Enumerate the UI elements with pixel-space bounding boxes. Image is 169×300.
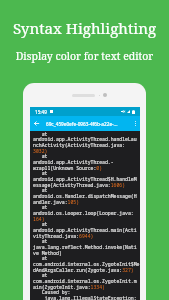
staticText: at <box>33 170 48 177</box>
staticText: android.app.ActivityThread.main(Acti <box>33 227 137 234</box>
staticText: Caused by: <box>33 289 71 296</box>
staticText: ain(ZygoteInit.java:1334) <box>33 284 105 291</box>
staticText: android.os.Handler.dispatchMessage(H <box>33 193 137 200</box>
staticText: com.android.internal.os.ZygoteInit$Me <box>33 261 140 268</box>
staticText: at <box>33 221 48 228</box>
staticText: java.lang.IllegalStateException: <box>33 295 137 300</box>
staticText: andler.java:105) <box>33 199 80 206</box>
staticText: android.app.ActivityThread.- <box>33 159 114 166</box>
staticText: essage(ActivityThread.java:1606) <box>33 182 126 189</box>
staticText: 69c_459e0efe-0963-4f6b-a22e-... <box>46 121 130 127</box>
staticText: at <box>33 131 48 138</box>
staticText: com.android.internal.os.ZygoteInit.m <box>33 278 137 285</box>
staticText: 164) <box>33 216 45 223</box>
staticText: 3032) <box>33 148 48 155</box>
staticText: vityThread.java:6944) <box>33 233 94 240</box>
staticText: android.app.ActivityThread.handleLau <box>33 136 137 143</box>
staticText: Display color for text editor <box>0 49 169 63</box>
staticText: Syntax Highlighting <box>0 18 169 39</box>
staticText: at <box>33 238 48 245</box>
staticText: at <box>33 187 48 194</box>
staticText: ve Method) <box>33 250 62 257</box>
staticText: 15:49 <box>35 109 47 115</box>
staticText: android.os.Looper.loop(Looper.java: <box>33 210 134 217</box>
staticText: java.lang.reflect.Method.invoke(Nati <box>33 244 137 251</box>
staticText: android.app.ActivityThread$H.handleM <box>33 176 137 183</box>
staticText: at <box>33 255 48 262</box>
button[interactable]: Back <box>30 116 42 131</box>
staticText: at <box>33 153 48 160</box>
staticText: wrap11(Unknown Source:0) <box>33 165 103 172</box>
staticText: nchActivity(ActivityThread.java: <box>33 142 126 149</box>
staticText: at <box>33 272 48 279</box>
staticText: dAndArgsCaller.run(Zygote.java:327) <box>33 267 134 274</box>
staticText: at <box>33 204 48 211</box>
button[interactable]: More options <box>130 116 140 131</box>
